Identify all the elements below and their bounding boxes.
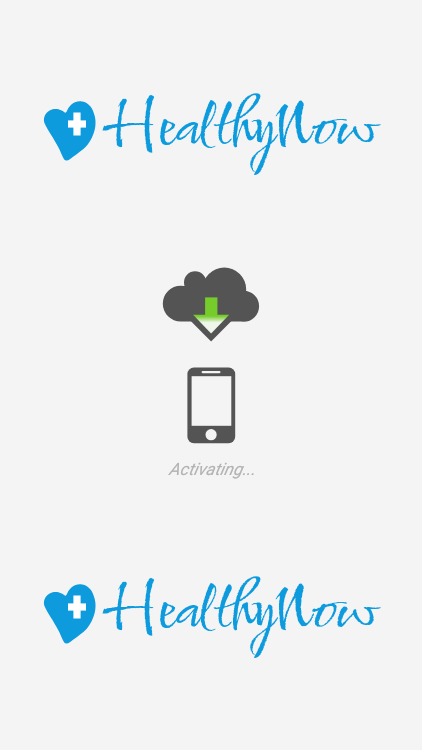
staticText: HealthyNow [111, 87, 377, 176]
staticText: HealthyNow [111, 570, 377, 659]
other: Phone [187, 367, 236, 444]
staticText: Activating... [1, 459, 422, 479]
other: Downloading [155, 258, 270, 348]
